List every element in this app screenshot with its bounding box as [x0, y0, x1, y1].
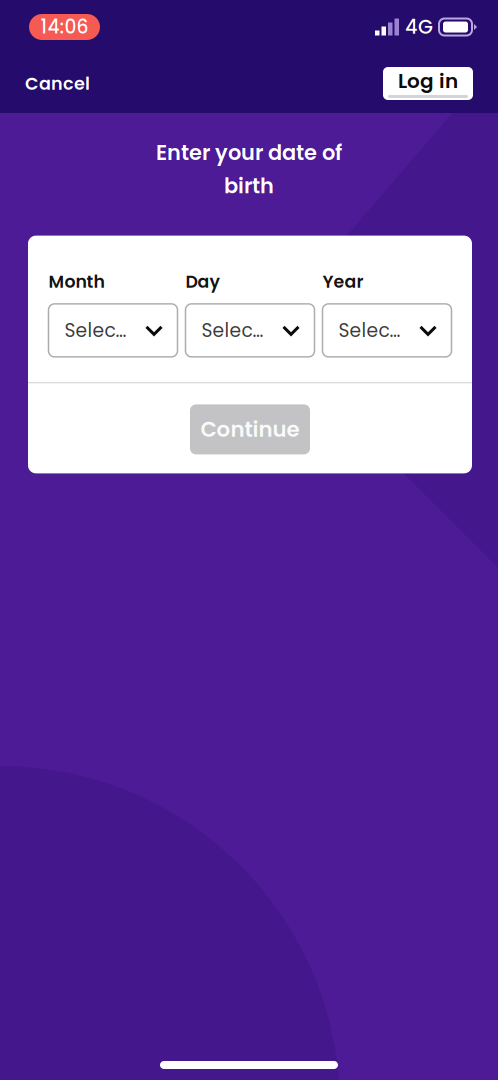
staticText: Selec… — [64, 317, 126, 343]
staticText: Enter your date of — [156, 138, 342, 167]
staticText: Continue — [200, 414, 299, 444]
staticText: Day — [185, 270, 219, 294]
staticText: 4G — [405, 13, 433, 41]
staticText: Year — [322, 270, 363, 294]
staticText: Month — [48, 270, 104, 294]
staticText: 14:06 — [40, 14, 88, 40]
button[interactable]: Cancel — [25, 66, 90, 100]
staticText: Log in — [398, 67, 458, 95]
button[interactable]: Selec… — [322, 304, 451, 357]
button[interactable]: Selec… — [48, 304, 177, 357]
button[interactable]: Continue — [190, 404, 310, 454]
button[interactable]: Log in — [383, 67, 473, 100]
staticText: Selec… — [338, 317, 400, 343]
button[interactable]: Selec… — [185, 304, 314, 357]
staticText: Cancel — [25, 71, 90, 96]
staticText: birth — [224, 171, 274, 201]
staticText: Selec… — [201, 317, 263, 343]
